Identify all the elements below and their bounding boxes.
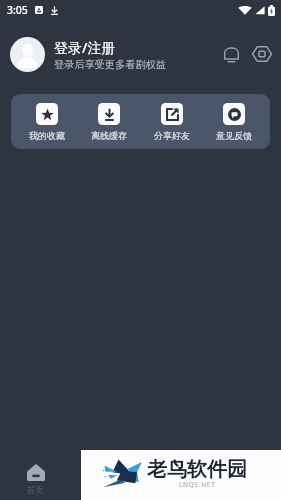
staticText: LNQS.NET — [179, 480, 216, 489]
staticText: 老鸟软件园 — [147, 457, 247, 482]
staticText: 登录后享受更多看剧权益 — [54, 58, 167, 71]
staticText: 意见反馈 — [216, 130, 252, 141]
button[interactable]: 首页 — [0, 464, 71, 496]
staticText: 3:05 — [7, 3, 28, 17]
staticText: 首页 — [27, 485, 44, 496]
button[interactable]: 分享好友 — [141, 100, 203, 144]
staticText: 分享好友 — [154, 130, 190, 141]
button[interactable]: Settings — [250, 42, 274, 66]
button[interactable]: Notifications — [219, 42, 243, 66]
button[interactable]: 我的收藏 — [16, 100, 78, 144]
button[interactable]: Avatar — [10, 37, 45, 72]
staticText: 登录/注册 — [54, 38, 116, 57]
staticText: 我的收藏 — [29, 130, 65, 141]
button[interactable]: 意见反馈 — [203, 100, 265, 144]
button[interactable]: 离线缓存 — [78, 100, 140, 144]
staticText: 离线缓存 — [91, 130, 127, 141]
